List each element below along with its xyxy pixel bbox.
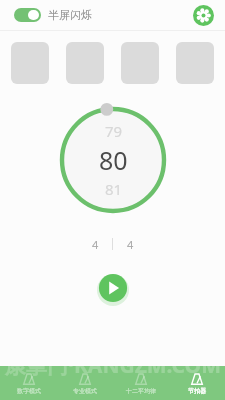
button[interactable]: Settings <box>193 5 214 26</box>
button[interactable]: 节拍器 <box>169 366 225 400</box>
button[interactable] <box>66 42 104 84</box>
staticText: 康掌门·KANGZM.COM <box>5 351 221 380</box>
button[interactable]: 半屏闪烁 <box>14 8 92 22</box>
staticText: 专业模式 <box>73 387 97 395</box>
button[interactable] <box>176 42 214 84</box>
staticText: 4 <box>127 237 134 252</box>
staticText: 节拍器 <box>188 387 206 395</box>
staticText: 数字模式 <box>17 387 41 395</box>
button[interactable]: 十二平均律 <box>113 366 169 400</box>
button[interactable]: 数字模式 <box>0 366 57 400</box>
button[interactable] <box>121 42 159 84</box>
button[interactable]: 79 <box>55 102 171 218</box>
staticText: 80 <box>99 143 128 177</box>
button[interactable]: 4 <box>113 234 147 254</box>
button[interactable] <box>11 42 49 84</box>
staticText: 十二平均律 <box>126 387 156 395</box>
button[interactable]: Play <box>97 272 129 304</box>
staticText: 81 <box>105 179 123 199</box>
staticText: 半屏闪烁 <box>48 8 92 22</box>
button[interactable]: 专业模式 <box>57 366 113 400</box>
staticText: 4 <box>92 237 99 252</box>
button[interactable]: 4 <box>78 234 112 254</box>
staticText: 79 <box>105 121 123 141</box>
